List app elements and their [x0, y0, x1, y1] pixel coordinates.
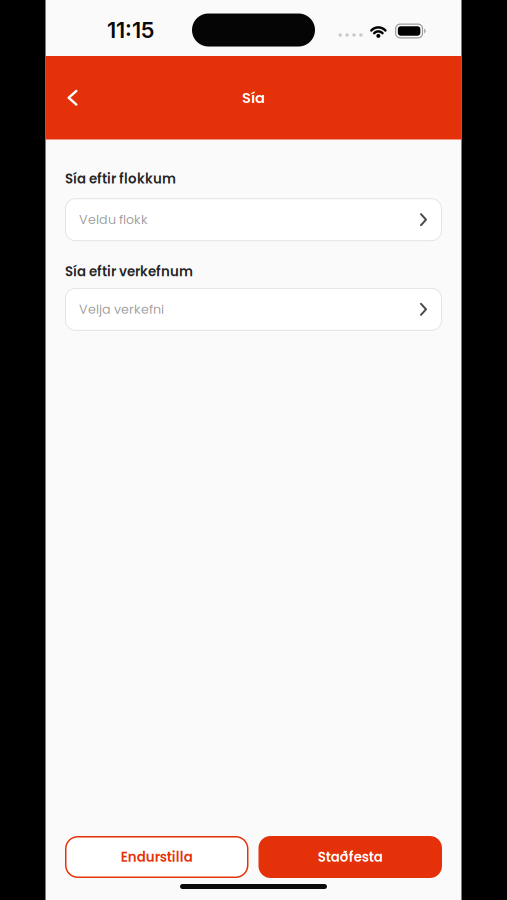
staticText: Staðfesta [318, 848, 383, 866]
staticText: Velja verkefni [79, 300, 164, 318]
staticText: 11:15 [107, 17, 154, 43]
staticText: Sía [242, 87, 265, 108]
button[interactable]: Endurstilla [65, 836, 248, 878]
staticText: Sía eftir flokkum [65, 169, 176, 188]
staticText: Sía eftir verkefnum [65, 262, 193, 281]
button[interactable]: Veldu flokk [65, 198, 442, 241]
staticText: Veldu flokk [79, 211, 148, 228]
staticText: Endurstilla [121, 848, 193, 866]
button[interactable]: Velja verkefni [65, 288, 442, 331]
button[interactable]: Back [45, 76, 77, 120]
button[interactable]: Staðfesta [258, 836, 442, 878]
